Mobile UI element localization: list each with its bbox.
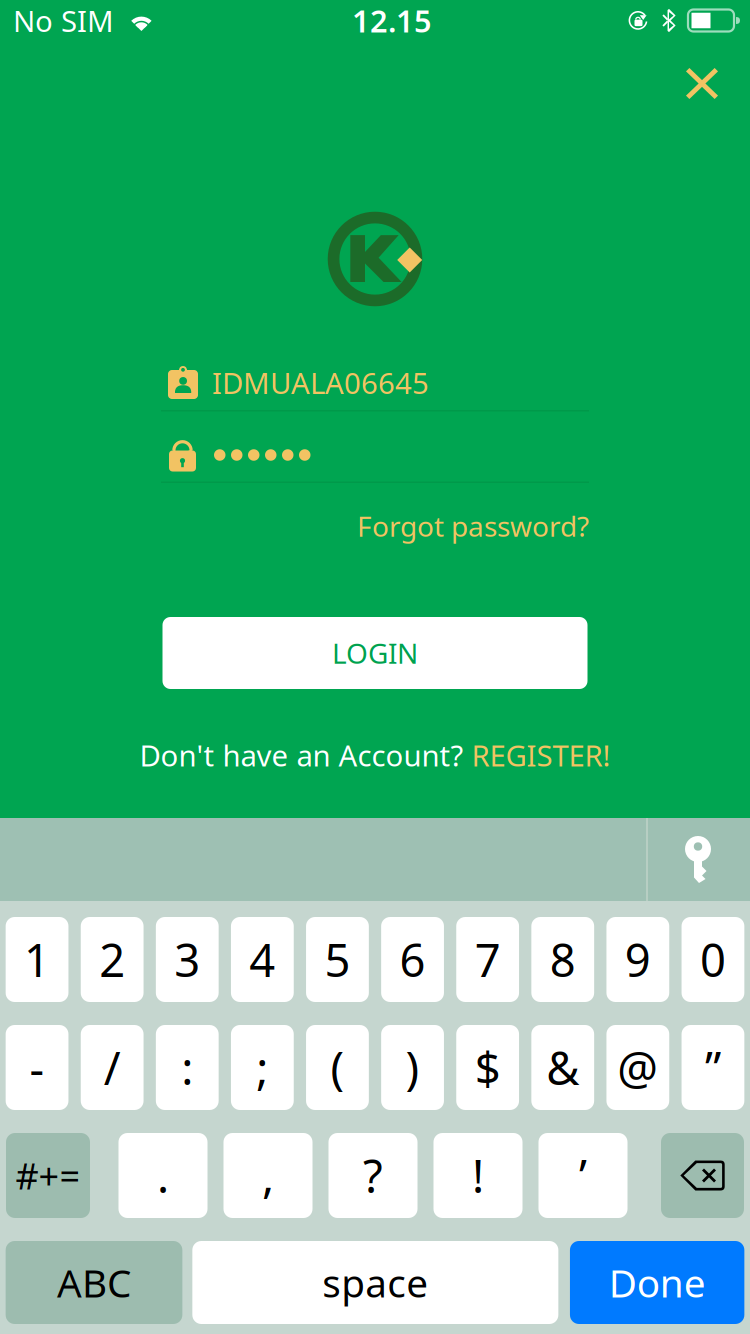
button[interactable]: ’ <box>538 1133 627 1218</box>
staticText: 0 <box>700 929 726 990</box>
staticText: , <box>262 1145 274 1206</box>
button[interactable]: 1 <box>6 917 68 1002</box>
staticText: No SIM <box>13 1 114 40</box>
staticText: ’ <box>579 1145 587 1206</box>
button[interactable]: 2 <box>81 917 143 1002</box>
staticText: 4 <box>249 929 275 990</box>
staticText: 5 <box>324 929 350 990</box>
button[interactable]: 9 <box>606 917 669 1002</box>
staticText: @ <box>617 1037 658 1098</box>
button[interactable]: 8 <box>531 917 594 1002</box>
button[interactable]: ! <box>433 1133 522 1218</box>
button[interactable]: Passwords <box>648 818 750 901</box>
staticText: $ <box>475 1037 501 1098</box>
button[interactable]: ? <box>328 1133 417 1218</box>
button[interactable]: ; <box>231 1025 294 1110</box>
staticText: 12.15 <box>352 0 432 41</box>
button[interactable]: . <box>118 1133 207 1218</box>
staticText: 8 <box>550 929 576 990</box>
staticText: ) <box>405 1037 419 1098</box>
button[interactable]: 4 <box>231 917 294 1002</box>
staticText: ( <box>330 1037 344 1098</box>
staticText: Don't have an Account? <box>139 735 471 774</box>
button[interactable]: 6 <box>381 917 444 1002</box>
staticText: IDMUALA06645 <box>212 363 429 402</box>
staticText: ; <box>256 1037 268 1098</box>
staticText: . <box>157 1145 169 1206</box>
staticText: 3 <box>174 929 200 990</box>
button[interactable]: Delete <box>661 1133 744 1218</box>
button[interactable]: - <box>6 1025 68 1110</box>
button[interactable]: Don't have an Account? <box>139 739 610 771</box>
button[interactable]: 3 <box>156 917 219 1002</box>
staticText: - <box>29 1037 44 1098</box>
button[interactable]: Done <box>570 1241 744 1324</box>
staticText: 2 <box>99 929 125 990</box>
staticText: / <box>104 1037 121 1098</box>
staticText: space <box>322 1257 428 1308</box>
staticText: 9 <box>625 929 651 990</box>
button[interactable]: ) <box>381 1025 444 1110</box>
staticText: 7 <box>475 929 501 990</box>
staticText: & <box>546 1037 579 1098</box>
button[interactable]: Forgot password? <box>357 507 589 545</box>
staticText: ! <box>472 1145 484 1206</box>
button[interactable]: $ <box>456 1025 519 1110</box>
button[interactable]: / <box>81 1025 143 1110</box>
staticText: 1 <box>24 929 50 990</box>
button[interactable]: LOGIN <box>162 617 587 689</box>
button[interactable]: space <box>192 1241 558 1324</box>
button[interactable]: ” <box>682 1025 744 1110</box>
staticText: 6 <box>399 929 425 990</box>
button[interactable]: ( <box>306 1025 369 1110</box>
button[interactable]: Close <box>674 42 730 111</box>
button[interactable]: 0 <box>682 917 744 1002</box>
staticText: ABC <box>57 1257 131 1308</box>
staticText: REGISTER! <box>471 735 610 774</box>
staticText: LOGIN <box>332 634 418 672</box>
staticText: Done <box>609 1257 706 1308</box>
button[interactable]: , <box>223 1133 312 1218</box>
button[interactable]: #+= <box>6 1133 90 1218</box>
button[interactable]: ABC <box>6 1241 182 1324</box>
staticText: Forgot password? <box>357 507 589 545</box>
button[interactable]: : <box>156 1025 219 1110</box>
button[interactable]: @ <box>606 1025 669 1110</box>
button[interactable]: 7 <box>456 917 519 1002</box>
button[interactable]: 5 <box>306 917 369 1002</box>
staticText: : <box>181 1037 193 1098</box>
staticText: ? <box>363 1145 383 1206</box>
staticText: ” <box>705 1037 721 1098</box>
staticText: #+= <box>15 1152 80 1199</box>
button[interactable]: & <box>531 1025 594 1110</box>
